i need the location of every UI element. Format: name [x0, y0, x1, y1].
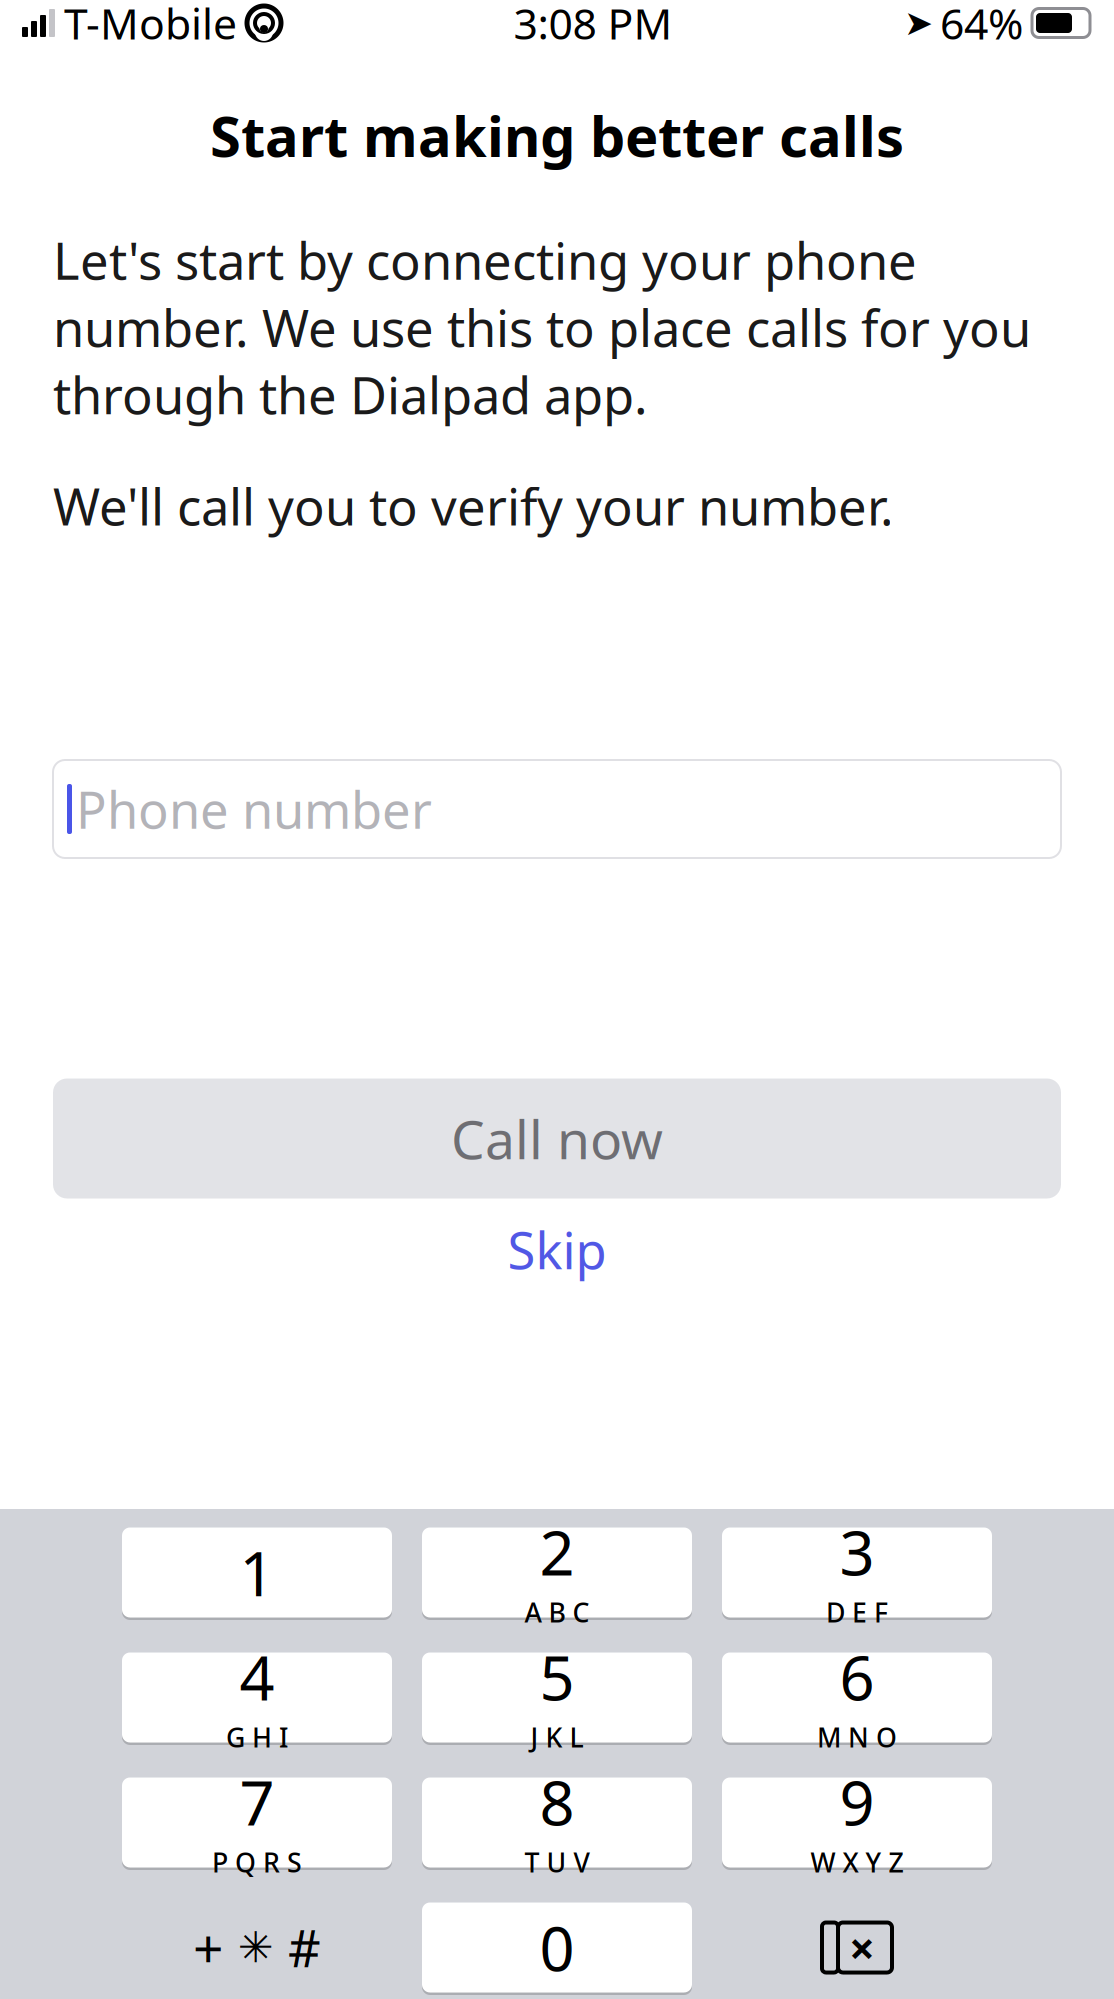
staticText: 4	[239, 1636, 274, 1717]
staticText: D E F	[826, 1594, 888, 1630]
staticText: We'll call you to verify your number.	[53, 472, 894, 539]
staticText: Phone number	[76, 775, 432, 843]
staticText: 1	[239, 1532, 274, 1613]
staticText: #	[288, 1914, 321, 1981]
staticText: ➤	[904, 3, 933, 43]
button[interactable]: 7	[122, 1775, 392, 1870]
staticText: G H I	[226, 1719, 288, 1755]
staticText: M N O	[817, 1719, 897, 1755]
button[interactable]: Skip	[407, 1210, 707, 1288]
staticText: 9	[839, 1761, 874, 1842]
staticText: 2	[539, 1511, 574, 1592]
staticText: Let's start by connecting your phone num…	[53, 226, 1031, 428]
staticText: 64%	[940, 0, 1023, 51]
staticText: 8	[539, 1761, 574, 1842]
staticText: W X Y Z	[810, 1844, 903, 1880]
staticText: T-Mobile	[64, 0, 237, 51]
button[interactable]: 6	[722, 1650, 992, 1745]
staticText: 3	[839, 1511, 874, 1592]
staticText: P Q R S	[212, 1844, 302, 1880]
staticText: 7	[239, 1761, 274, 1842]
button[interactable]: 9	[722, 1775, 992, 1870]
staticText: 5	[539, 1636, 574, 1717]
button[interactable]: 0	[422, 1900, 692, 1995]
button[interactable]: Plus, star, pound	[122, 1900, 392, 1995]
staticText: ×	[849, 1917, 875, 1978]
button[interactable]: 1	[122, 1525, 392, 1620]
staticText: Call now	[451, 1103, 663, 1174]
button[interactable]: Call now	[53, 1078, 1061, 1198]
staticText: 3:08 PM	[513, 0, 672, 51]
staticText: Start making better calls	[210, 98, 904, 172]
button[interactable]: 2	[422, 1525, 692, 1620]
button[interactable]: 4	[122, 1650, 392, 1745]
staticText: +	[193, 1912, 224, 1983]
button[interactable]: 5	[422, 1650, 692, 1745]
staticText: T U V	[524, 1844, 589, 1880]
staticText: J K L	[530, 1719, 583, 1755]
staticText: 6	[839, 1636, 874, 1717]
staticText: Skip	[507, 1216, 606, 1283]
button[interactable]: Phone number	[53, 760, 1061, 858]
button[interactable]: 3	[722, 1525, 992, 1620]
button[interactable]: 8	[422, 1775, 692, 1870]
button[interactable]: Delete	[722, 1900, 992, 1995]
staticText: ✳	[238, 1923, 274, 1972]
staticText: 0	[539, 1907, 574, 1988]
staticText: A B C	[524, 1594, 589, 1630]
